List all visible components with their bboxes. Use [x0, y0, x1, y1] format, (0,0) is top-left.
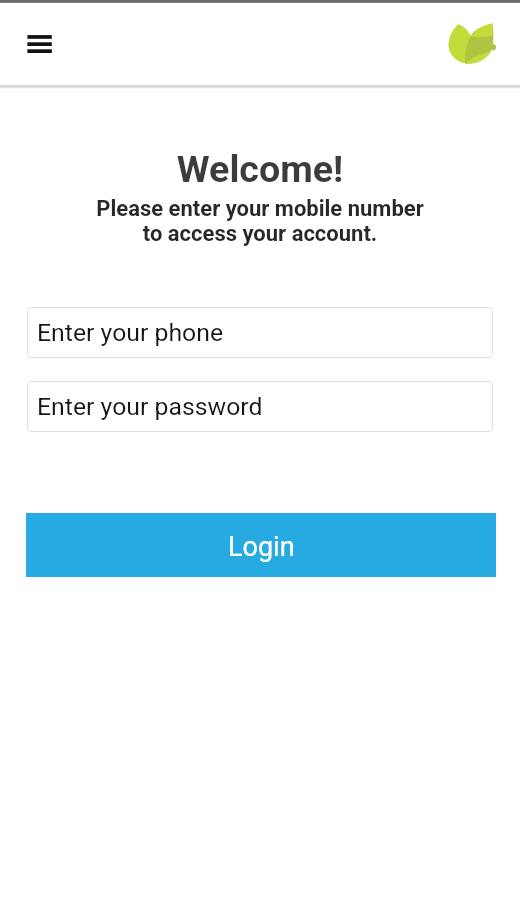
staticText: to access your account.: [0, 221, 520, 247]
staticText: Login: [228, 531, 295, 563]
button[interactable]: Enter your password: [27, 381, 493, 432]
button[interactable]: Login: [26, 513, 496, 577]
button[interactable]: Open navigation menu: [5, 13, 73, 77]
staticText: Enter your phone: [37, 318, 224, 347]
staticText: Please enter your mobile number: [0, 196, 520, 222]
button[interactable]: Enter your phone: [27, 307, 493, 358]
staticText: Enter your password: [37, 392, 263, 421]
staticText: Welcome!: [0, 147, 520, 191]
